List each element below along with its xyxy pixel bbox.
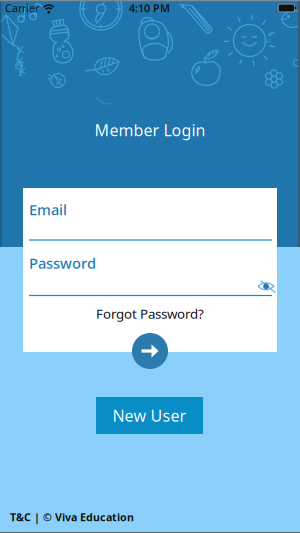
staticText: New User: [112, 405, 186, 426]
button[interactable]: T&C | © Viva Education: [10, 510, 290, 524]
button[interactable]: Forgot Password?: [96, 305, 204, 322]
staticText: T&C | © Viva Education: [10, 510, 134, 524]
button[interactable]: New User: [96, 397, 203, 434]
staticText: Forgot Password?: [96, 305, 204, 322]
staticText: Email: [29, 200, 67, 219]
button[interactable]: Log in: [130, 331, 170, 371]
button[interactable]: Show password: [255, 278, 277, 294]
staticText: 4:10 PM: [129, 1, 170, 15]
button[interactable]: Password: [29, 242, 272, 283]
staticText: Password: [29, 253, 96, 273]
staticText: Member Login: [94, 119, 205, 141]
staticText: Carrier: [5, 1, 39, 15]
button[interactable]: Email: [29, 189, 272, 230]
